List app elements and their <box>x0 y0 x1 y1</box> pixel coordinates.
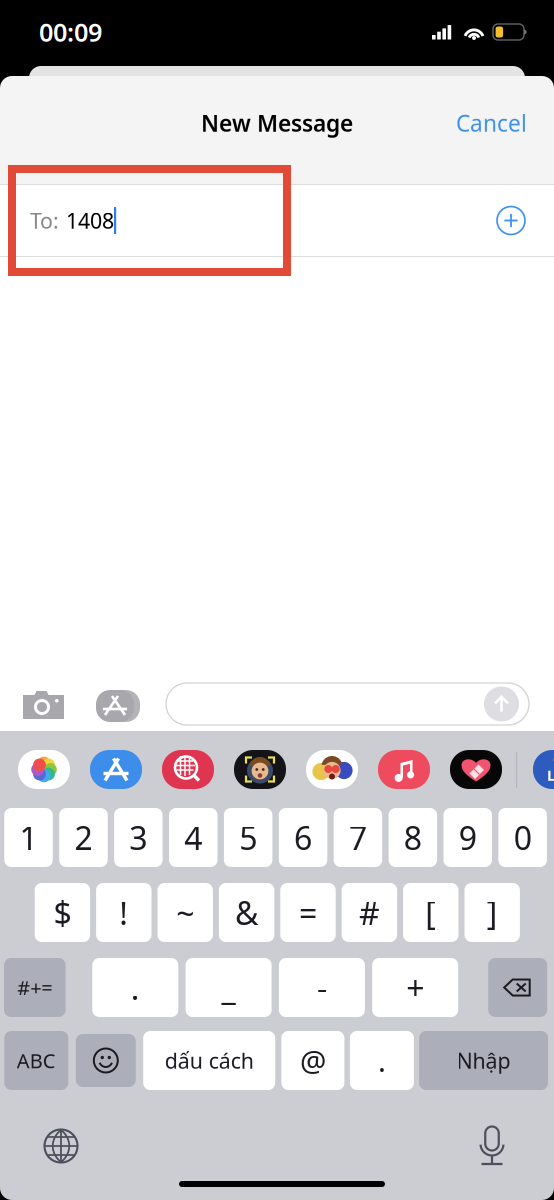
button[interactable]: # <box>342 883 397 942</box>
button[interactable]: ] <box>464 883 520 942</box>
staticText: dấu cách <box>165 1046 254 1075</box>
staticText: ] <box>487 891 498 934</box>
staticText: - <box>317 966 327 1009</box>
button[interactable]: 7 <box>334 808 382 867</box>
button[interactable]: + <box>372 958 458 1017</box>
button[interactable]: ! <box>96 883 151 942</box>
button[interactable]: #+= <box>4 958 66 1017</box>
button[interactable]: ABC <box>4 1031 68 1090</box>
staticText: 4 <box>184 816 202 859</box>
staticText: + <box>406 966 424 1009</box>
button[interactable]: Switch keyboard <box>36 1121 86 1171</box>
button[interactable]: Add contact <box>488 197 534 243</box>
staticText: 7 <box>349 816 367 859</box>
button[interactable]: Delete <box>488 958 547 1017</box>
button[interactable]: _ <box>186 958 272 1017</box>
staticText: . <box>378 1041 386 1080</box>
staticText: ! <box>119 891 128 934</box>
button[interactable]: Emoji <box>76 1034 136 1087</box>
staticText: ABC <box>17 1047 56 1074</box>
staticText: [ <box>425 891 436 934</box>
button[interactable]: - <box>279 958 365 1017</box>
button[interactable]: App Store <box>94 690 138 722</box>
button[interactable]: Memoji <box>234 750 286 789</box>
button[interactable]: Lazada <box>533 750 554 789</box>
button[interactable]: Image search <box>162 750 214 789</box>
button[interactable]: Photos <box>18 750 70 789</box>
button[interactable]: . <box>350 1031 414 1090</box>
button[interactable]: Nhập <box>419 1031 548 1090</box>
staticText: ~ <box>176 891 194 934</box>
staticText: & <box>235 891 258 934</box>
button[interactable]: 8 <box>389 808 437 867</box>
button[interactable]: 6 <box>279 808 327 867</box>
button[interactable]: ~ <box>157 883 213 942</box>
staticText: 1408 <box>66 206 114 235</box>
staticText: 8 <box>404 816 422 859</box>
button[interactable]: . <box>92 958 178 1017</box>
staticText: Cancel <box>456 108 527 138</box>
button[interactable]: & <box>219 883 274 942</box>
button[interactable]: 5 <box>224 808 272 867</box>
staticText: 6 <box>294 816 312 859</box>
staticText: 1 <box>20 816 38 859</box>
staticText: @ <box>300 1041 326 1080</box>
button[interactable]: 4 <box>169 808 217 867</box>
button[interactable]: $ <box>35 883 90 942</box>
staticText: . <box>131 966 140 1009</box>
button[interactable]: dấu cách <box>143 1031 275 1090</box>
staticText: 9 <box>459 816 477 859</box>
staticText: Laz <box>547 765 554 785</box>
button[interactable]: 9 <box>443 808 492 867</box>
staticText: $ <box>53 891 71 934</box>
staticText: #+= <box>17 974 52 1001</box>
button[interactable]: 1 <box>4 808 53 867</box>
button[interactable]: Cancel <box>442 94 541 152</box>
staticText: New Message <box>201 108 353 138</box>
staticText: # <box>359 891 380 934</box>
staticText: 00:09 <box>39 15 102 49</box>
button[interactable]: Camera <box>23 691 64 719</box>
staticText: Nhập <box>457 1046 511 1075</box>
button[interactable]: Memoji stickers <box>306 750 358 789</box>
button[interactable]: Health <box>450 750 502 789</box>
staticText: 5 <box>239 816 257 859</box>
button[interactable]: [ <box>403 883 458 942</box>
button[interactable]: Music <box>378 750 430 789</box>
staticText: 2 <box>74 816 92 859</box>
staticText: _ <box>222 966 236 1009</box>
button[interactable]: App Store <box>90 750 142 789</box>
staticText: = <box>299 891 317 934</box>
staticText: To: <box>30 206 59 235</box>
button[interactable]: 2 <box>59 808 108 867</box>
button[interactable]: = <box>280 883 336 942</box>
button[interactable]: 3 <box>114 808 163 867</box>
button[interactable]: @ <box>281 1031 344 1090</box>
staticText: 3 <box>129 816 147 859</box>
staticText: 0 <box>514 816 532 859</box>
button[interactable]: 0 <box>498 808 547 867</box>
button[interactable]: Dictation <box>467 1121 517 1171</box>
